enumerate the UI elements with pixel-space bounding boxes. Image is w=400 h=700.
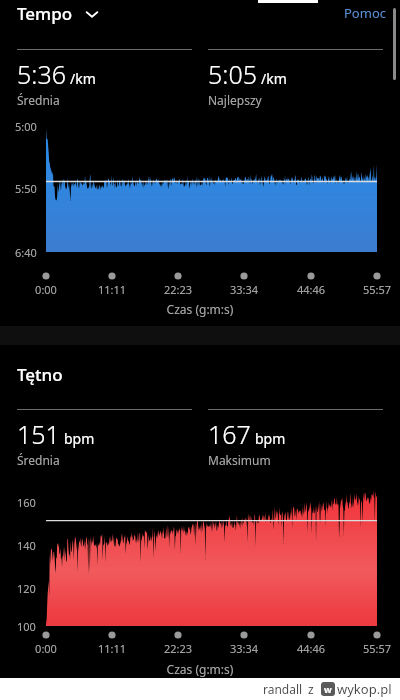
- staticText: bpm: [64, 429, 95, 448]
- staticText: /km: [70, 69, 96, 88]
- staticText: Czas (g:m:s): [0, 301, 400, 317]
- staticText: randall: [263, 681, 303, 697]
- staticText: /km: [261, 69, 287, 88]
- staticText: Średnia: [17, 452, 60, 468]
- staticText: Pomoc: [344, 4, 386, 22]
- staticText: 44:46: [291, 282, 331, 297]
- staticText: Średnia: [17, 92, 60, 108]
- staticText: 5:00: [15, 119, 37, 134]
- staticText: 0:00: [26, 641, 66, 656]
- staticText: 5:36: [17, 57, 66, 91]
- staticText: 160: [17, 495, 36, 510]
- staticText: 100: [17, 619, 36, 634]
- staticText: 151: [17, 417, 60, 451]
- staticText: z: [308, 681, 314, 697]
- staticText: 11:11: [92, 282, 132, 297]
- staticText: 167: [208, 417, 251, 451]
- button[interactable]: Tempo: [0, 2, 107, 25]
- staticText: 140: [17, 538, 36, 553]
- staticText: 0:00: [26, 282, 66, 297]
- staticText: 5:50: [15, 181, 37, 196]
- staticText: Czas (g:m:s): [0, 661, 400, 677]
- staticText: wykop.pl: [337, 680, 392, 698]
- staticText: 44:46: [291, 641, 331, 656]
- other: Scroll position: [393, 8, 396, 80]
- staticText: 22:23: [158, 282, 198, 297]
- staticText: 11:11: [92, 641, 132, 656]
- staticText: 120: [17, 581, 36, 596]
- staticText: Najlepszy: [208, 92, 262, 108]
- staticText: bpm: [255, 429, 286, 448]
- button[interactable]: Pomoc: [330, 1, 400, 25]
- staticText: Maksimum: [208, 452, 271, 468]
- staticText: 6:40: [15, 245, 37, 260]
- staticText: Tempo: [17, 2, 73, 25]
- staticText: 5:05: [208, 57, 257, 91]
- staticText: Tętno: [17, 363, 63, 386]
- staticText: 33:34: [224, 282, 264, 297]
- staticText: w: [324, 683, 332, 695]
- staticText: 22:23: [158, 641, 198, 656]
- staticText: 55:57: [357, 282, 397, 297]
- staticText: 55:57: [357, 641, 397, 656]
- staticText: 33:34: [224, 641, 264, 656]
